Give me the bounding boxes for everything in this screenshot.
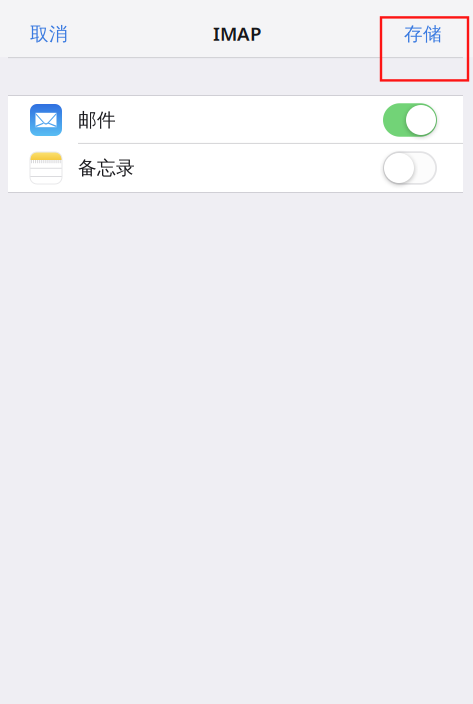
button[interactable]: 取消 bbox=[16, 5, 82, 62]
staticText: 备忘录 bbox=[78, 156, 135, 179]
staticText: 取消 bbox=[30, 22, 68, 45]
staticText: 邮件 bbox=[78, 108, 116, 131]
staticText: IMAP bbox=[213, 21, 261, 46]
button[interactable]: 存储 bbox=[379, 5, 467, 62]
button[interactable]: 备忘录 bbox=[8, 144, 463, 192]
staticText: 存储 bbox=[404, 22, 442, 45]
button[interactable]: 邮件 bbox=[8, 96, 463, 144]
